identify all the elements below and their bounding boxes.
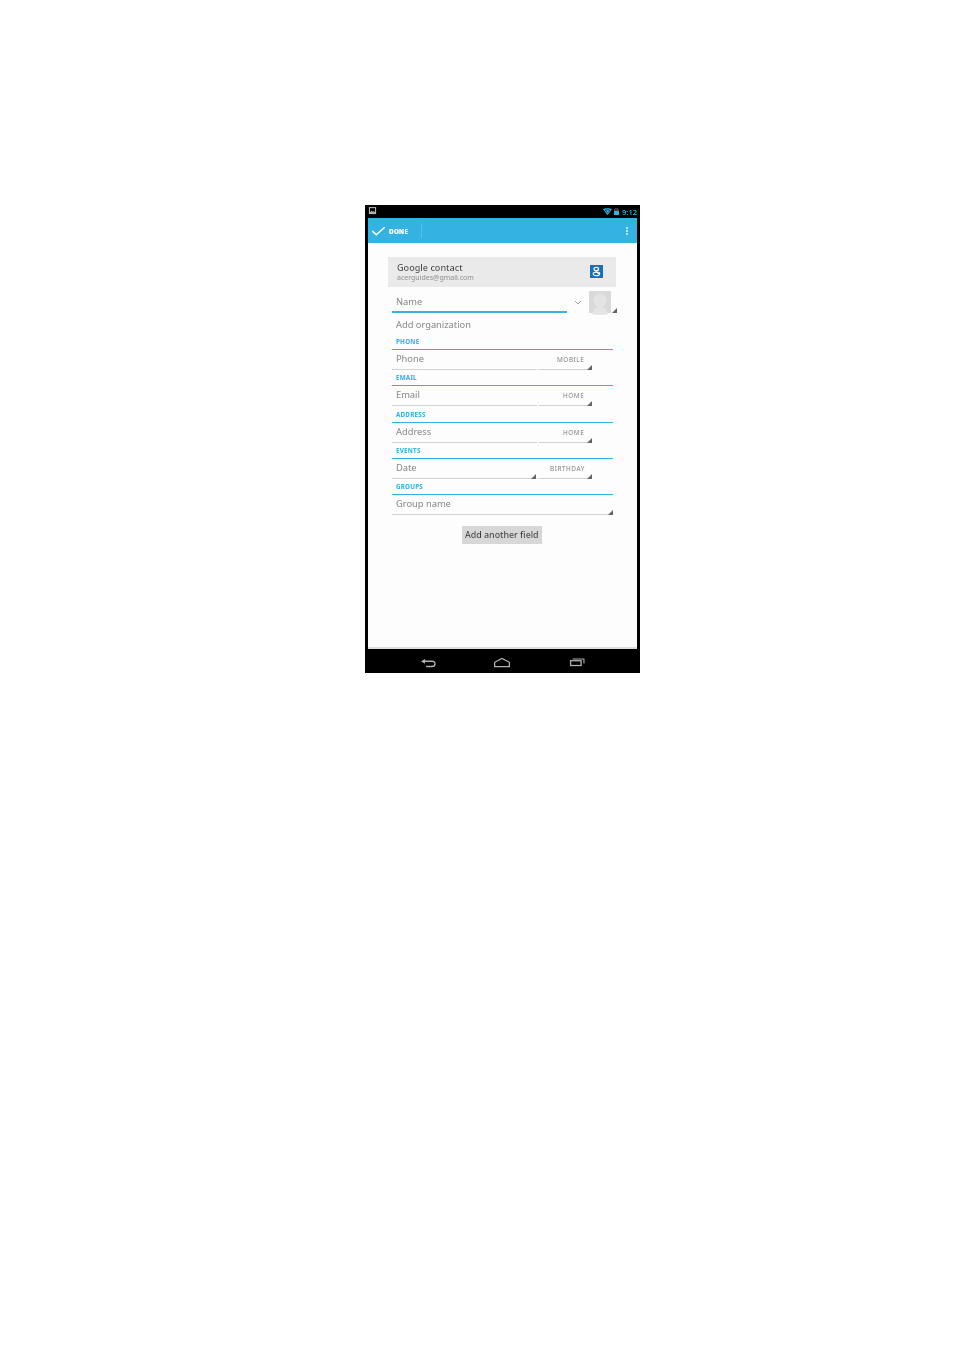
staticText: MOBILE [557,355,585,364]
button[interactable]: Group name [392,494,613,515]
button[interactable]: Email [392,385,537,406]
staticText: EMAIL [396,373,417,382]
button[interactable]: Home [491,653,513,671]
button[interactable]: Add contact photo [589,291,611,313]
staticText: HOME [563,391,585,400]
staticText: PHONE [396,337,420,346]
staticText: 9:12 [622,207,638,217]
button[interactable]: Address [392,422,537,443]
staticText: Address [396,425,432,438]
staticText: DONE [389,227,409,235]
staticText: ADDRESS [396,410,426,419]
button[interactable]: Back [417,654,439,671]
button[interactable]: Google contact [388,257,616,287]
button[interactable]: Add organization [392,316,522,332]
button[interactable]: Date [392,458,537,479]
staticText: Add organization [396,318,471,331]
button[interactable]: Name [392,292,567,313]
button[interactable]: More options [617,218,637,243]
button[interactable]: Add another field [462,526,542,544]
staticText: Phone [396,352,424,365]
staticText: Add another field [465,529,539,541]
staticText: GROUPS [396,482,424,491]
staticText: Name [396,295,423,308]
staticText: Date [396,461,417,474]
staticText: acerguides@gmail.com [397,273,474,283]
button[interactable]: MOBILE [539,352,592,370]
button[interactable]: HOME [539,388,592,406]
staticText: Group name [396,497,451,510]
staticText: Google contact [397,261,463,273]
staticText: Email [396,388,420,401]
staticText: HOME [563,428,585,437]
staticText: BIRTHDAY [550,464,585,473]
button[interactable]: HOME [539,425,592,443]
button[interactable]: DONE [368,218,417,243]
button[interactable]: Recent apps [566,653,588,671]
staticText: EVENTS [396,446,421,455]
button[interactable]: Phone [392,349,537,370]
button[interactable]: BIRTHDAY [539,461,592,479]
